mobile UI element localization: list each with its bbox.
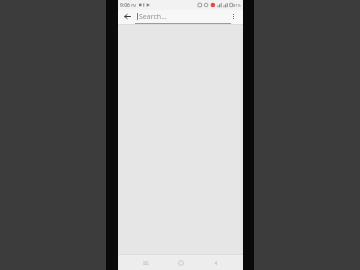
staticText: PM <box>131 3 137 8</box>
button[interactable]: Back <box>208 255 223 270</box>
button[interactable]: Home <box>173 255 188 270</box>
staticText: 81% <box>233 3 241 8</box>
button[interactable]: Search… <box>137 10 226 23</box>
button[interactable]: More options <box>228 11 239 22</box>
button[interactable]: Navigate up <box>122 11 133 22</box>
staticText: Search… <box>139 12 167 22</box>
button[interactable]: Recent apps <box>138 255 153 270</box>
staticText: 9:06 <box>120 2 130 9</box>
